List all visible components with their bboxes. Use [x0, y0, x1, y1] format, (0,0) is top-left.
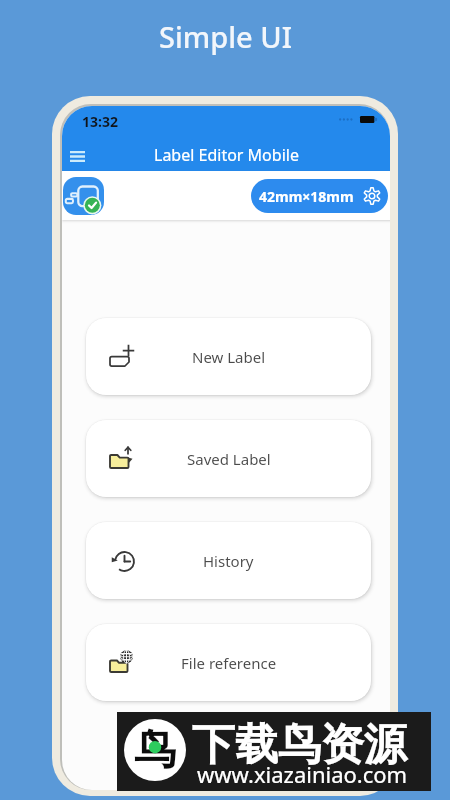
button[interactable]: Saved Label — [86, 420, 371, 497]
staticText: 下载鸟资源 — [192, 718, 407, 772]
staticText: Simple UI — [159, 17, 292, 56]
staticText: 42mm×18mm — [259, 187, 354, 206]
staticText: New Label — [192, 347, 266, 367]
button[interactable]: File reference — [86, 624, 371, 701]
staticText: Label Editor Mobile — [154, 144, 299, 166]
staticText: 13:32 — [82, 112, 118, 131]
staticText: History — [203, 551, 254, 571]
button[interactable]: Menu — [62, 141, 92, 171]
staticText: www.xiazainiao.com — [197, 759, 408, 789]
staticText: 鸟 — [134, 724, 176, 777]
button[interactable]: History — [86, 522, 371, 599]
button[interactable]: New Label — [86, 318, 371, 395]
staticText: Saved Label — [187, 449, 271, 469]
staticText: File reference — [181, 653, 277, 673]
button[interactable]: Printer connected — [63, 177, 104, 215]
button[interactable]: 42mm×18mm — [251, 179, 388, 213]
